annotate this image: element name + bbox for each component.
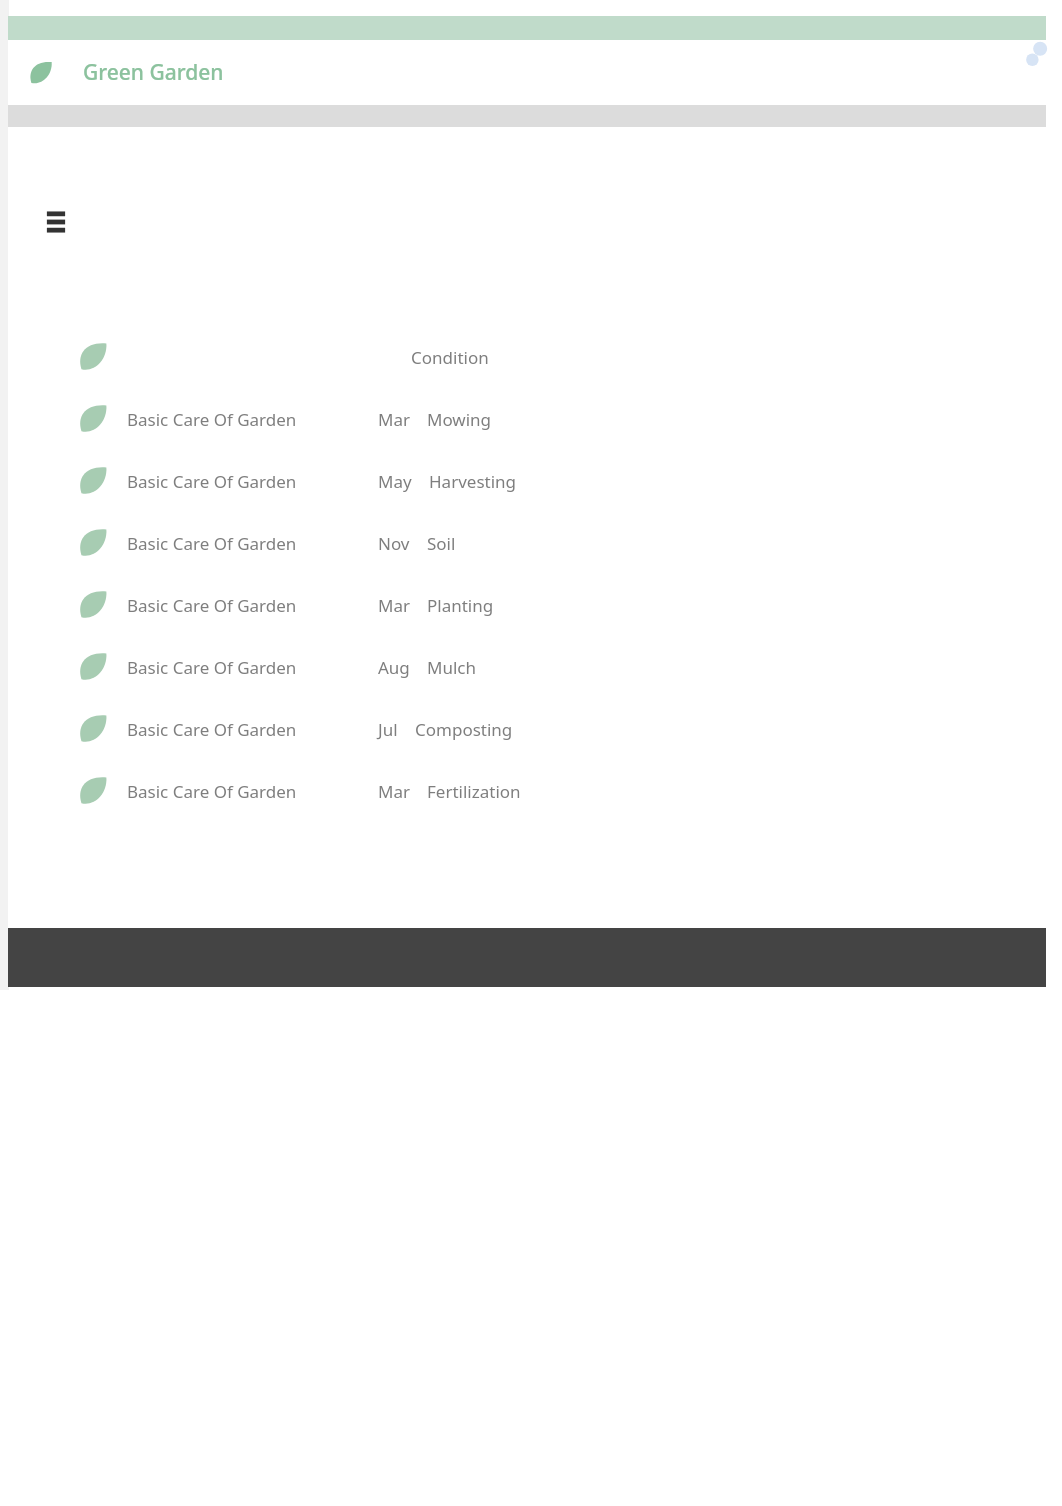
staticText: Aug bbox=[378, 656, 410, 679]
button[interactable]: Assistant bbox=[1021, 39, 1051, 69]
staticText: Basic Care Of Garden bbox=[127, 532, 297, 555]
staticText: Fertilization bbox=[427, 780, 521, 803]
staticText: Basic Care Of Garden bbox=[127, 780, 297, 803]
staticText: Jul bbox=[378, 718, 398, 741]
button[interactable]: Basic Care Of Garden bbox=[8, 512, 1046, 574]
staticText: Harvesting bbox=[429, 470, 517, 493]
staticText: Composting bbox=[415, 718, 513, 741]
staticText: Basic Care Of Garden bbox=[127, 594, 297, 617]
button[interactable]: Condition bbox=[8, 326, 1046, 388]
button[interactable]: Basic Care Of Garden bbox=[8, 388, 1046, 450]
staticText: Nov bbox=[378, 532, 410, 555]
button[interactable]: Basic Care Of Garden bbox=[8, 636, 1046, 698]
button[interactable]: Menu bbox=[42, 208, 70, 236]
staticText: Condition bbox=[411, 346, 489, 369]
button[interactable]: Basic Care Of Garden bbox=[8, 760, 1046, 822]
staticText: Basic Care Of Garden bbox=[127, 718, 297, 741]
staticText: May bbox=[378, 470, 412, 493]
staticText: Basic Care Of Garden bbox=[127, 656, 297, 679]
staticText: Mar bbox=[378, 594, 410, 617]
staticText: Mowing bbox=[427, 408, 492, 431]
staticText: Basic Care Of Garden bbox=[127, 408, 297, 431]
staticText: Soil bbox=[427, 532, 456, 555]
staticText: Green Garden bbox=[83, 58, 224, 87]
button[interactable]: Basic Care Of Garden bbox=[8, 450, 1046, 512]
staticText: Mar bbox=[378, 408, 410, 431]
staticText: Mulch bbox=[427, 656, 476, 679]
button[interactable]: Basic Care Of Garden bbox=[8, 574, 1046, 636]
staticText: Mar bbox=[378, 780, 410, 803]
button[interactable]: Basic Care Of Garden bbox=[8, 698, 1046, 760]
button[interactable]: Green Garden bbox=[8, 40, 1046, 105]
staticText: Planting bbox=[427, 594, 494, 617]
staticText: Basic Care Of Garden bbox=[127, 470, 297, 493]
